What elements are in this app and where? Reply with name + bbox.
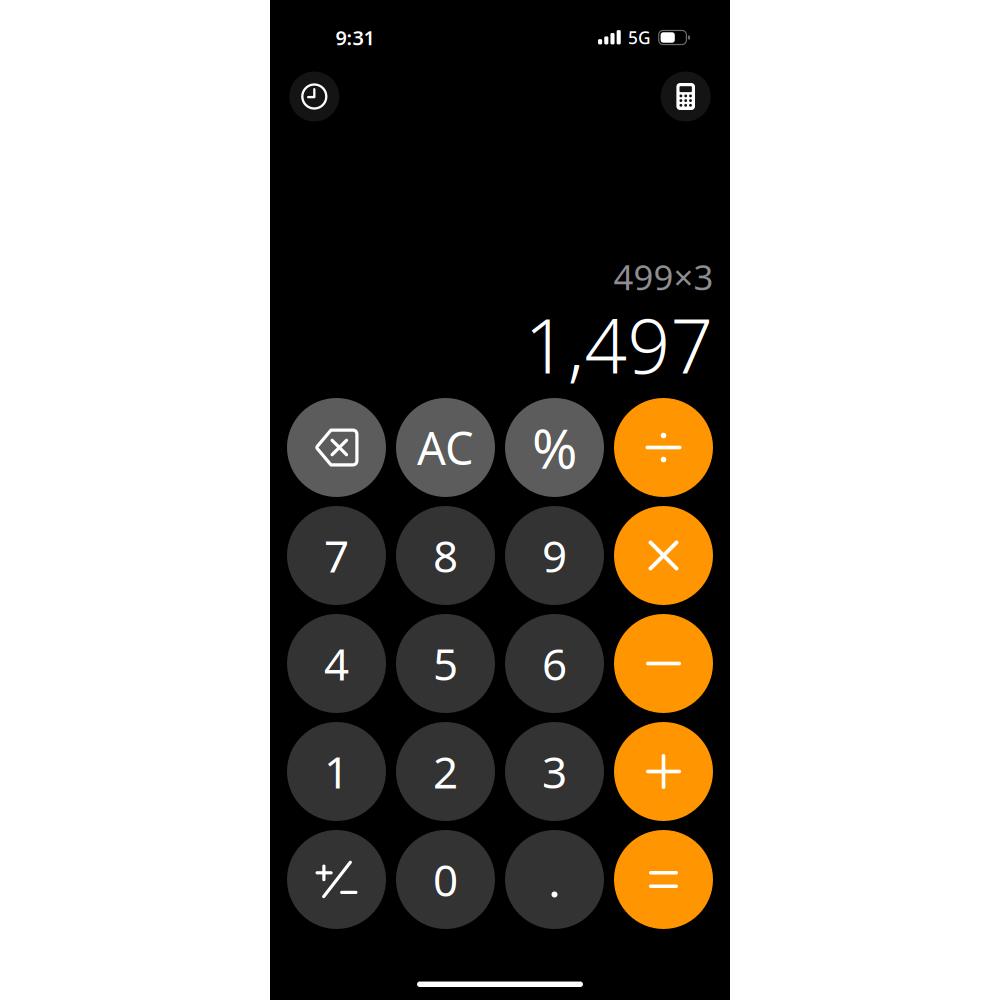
button[interactable]: 0 (396, 830, 495, 929)
button[interactable]: Calculator mode (661, 71, 711, 121)
button[interactable]: Percent (505, 398, 604, 497)
staticText: 1 (324, 742, 349, 801)
button[interactable]: Plus (614, 722, 713, 821)
staticText: AC (417, 417, 474, 478)
button[interactable]: Divide (614, 398, 713, 497)
staticText: 5G (628, 26, 651, 49)
button[interactable]: Plus minus (287, 830, 386, 929)
staticText: 6 (542, 634, 567, 693)
button[interactable]: 9 (505, 506, 604, 605)
button[interactable]: Equals (614, 830, 713, 929)
button[interactable]: Multiply (614, 506, 713, 605)
button[interactable]: Delete (287, 398, 386, 497)
button[interactable]: 5 (396, 614, 495, 713)
button[interactable]: History (289, 71, 339, 121)
button[interactable]: 2 (396, 722, 495, 821)
button[interactable]: 6 (505, 614, 604, 713)
staticText: 1,497 (524, 295, 713, 394)
staticText: 8 (433, 526, 458, 585)
button[interactable]: Minus (614, 614, 713, 713)
button[interactable]: 7 (287, 506, 386, 605)
staticText: % (532, 411, 577, 484)
staticText: 4 (324, 634, 349, 693)
button[interactable]: Decimal point (505, 830, 604, 929)
staticText: 499×3 (613, 254, 713, 300)
staticText: 2 (433, 742, 458, 801)
staticText: 3 (542, 742, 567, 801)
staticText: 7 (324, 526, 349, 585)
staticText: 0 (433, 850, 458, 909)
button[interactable]: 4 (287, 614, 386, 713)
button[interactable]: 1 (287, 722, 386, 821)
staticText: 9:31 (335, 24, 374, 51)
button[interactable]: 8 (396, 506, 495, 605)
button[interactable]: All clear (396, 398, 495, 497)
staticText: 9 (542, 526, 567, 585)
staticText: 5 (433, 634, 458, 693)
button[interactable]: 3 (505, 722, 604, 821)
